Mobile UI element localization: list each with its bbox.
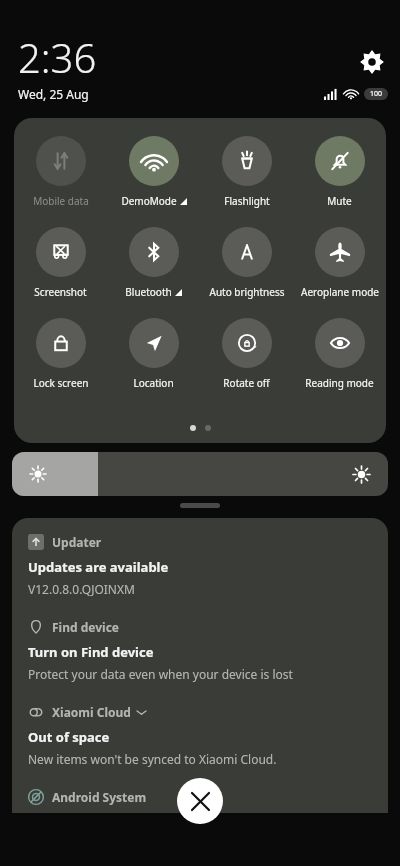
staticText: Protect your data even when your device … [28, 666, 293, 682]
staticText: DemoMode [121, 194, 177, 208]
button[interactable]: Rotate off [200, 318, 293, 390]
staticText: Reading mode [305, 376, 374, 390]
staticText: 100 [370, 89, 383, 99]
staticText: Updater [52, 534, 102, 550]
staticText: Flashlight [224, 194, 270, 208]
button[interactable]: Close notifications [177, 778, 223, 824]
staticText: Find device [52, 619, 119, 635]
staticText: Turn on Find device [28, 643, 154, 661]
button[interactable]: Flashlight [200, 136, 293, 208]
staticText: Updates are available [28, 558, 169, 576]
button[interactable]: Mobile data [14, 136, 107, 208]
button[interactable]: Reading mode [293, 318, 386, 390]
staticText: Wed, 25 Aug [18, 86, 89, 102]
staticText: New items won't be synced to Xiaomi Clou… [28, 751, 277, 767]
staticText: Mobile data [33, 194, 89, 208]
staticText: Bluetooth [125, 285, 172, 299]
button[interactable]: Android System [28, 789, 372, 805]
button[interactable]: Find device [28, 619, 372, 635]
button[interactable]: Settings [358, 48, 386, 76]
button[interactable]: Mute [293, 136, 386, 208]
staticText: Out of space [28, 728, 110, 746]
button[interactable]: Auto brightness [200, 227, 293, 299]
button[interactable]: DemoMode [107, 136, 200, 208]
staticText: Auto brightness [209, 285, 285, 299]
button[interactable]: Lock screen [14, 318, 107, 390]
button[interactable]: Screenshot [14, 227, 107, 299]
button[interactable]: Updater [28, 534, 372, 550]
staticText: Mute [327, 194, 352, 208]
staticText: Lock screen [33, 376, 89, 390]
staticText: Aeroplane mode [301, 285, 379, 299]
button[interactable]: Bluetooth [107, 227, 200, 299]
staticText: Android System [52, 789, 147, 805]
staticText: 2:36 [18, 30, 97, 84]
staticText: V12.0.8.0.QJOINXM [28, 581, 135, 597]
staticText: Screenshot [34, 285, 87, 299]
staticText: Rotate off [223, 376, 270, 390]
button[interactable]: Aeroplane mode [293, 227, 386, 299]
staticText: Location [133, 376, 174, 390]
button[interactable]: Location [107, 318, 200, 390]
button[interactable]: Brightness [12, 452, 388, 496]
button[interactable]: Xiaomi Cloud [28, 704, 372, 720]
staticText: Xiaomi Cloud [52, 704, 131, 720]
